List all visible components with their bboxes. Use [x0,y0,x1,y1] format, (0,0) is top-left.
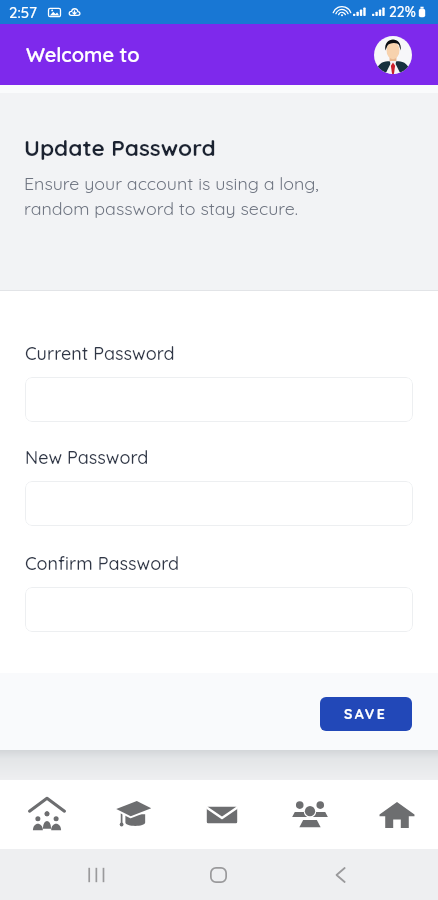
staticText: Update Password [24,133,216,161]
staticText: Confirm Password [25,552,180,575]
staticText: SAVE [344,705,388,723]
button[interactable]: Recents [66,849,125,900]
button[interactable]: Community [263,780,349,849]
button[interactable] [25,587,413,632]
button[interactable] [25,481,413,526]
staticText: Welcome to [26,42,140,67]
staticText: 2:57 [9,3,37,22]
button[interactable]: Back [311,849,370,900]
button[interactable] [25,377,413,422]
button[interactable]: Education [90,780,176,849]
button[interactable]: Profile [374,36,412,74]
staticText: Ensure your account is using a long, ran… [24,172,319,219]
staticText: Current Password [25,342,175,365]
staticText: 22% [389,3,416,21]
button[interactable]: Home [349,780,435,849]
button[interactable]: Family [3,780,89,849]
staticText: New Password [25,446,149,469]
button[interactable]: SAVE [320,697,412,731]
button[interactable]: Home [189,849,248,900]
button[interactable]: Messages [176,780,262,849]
